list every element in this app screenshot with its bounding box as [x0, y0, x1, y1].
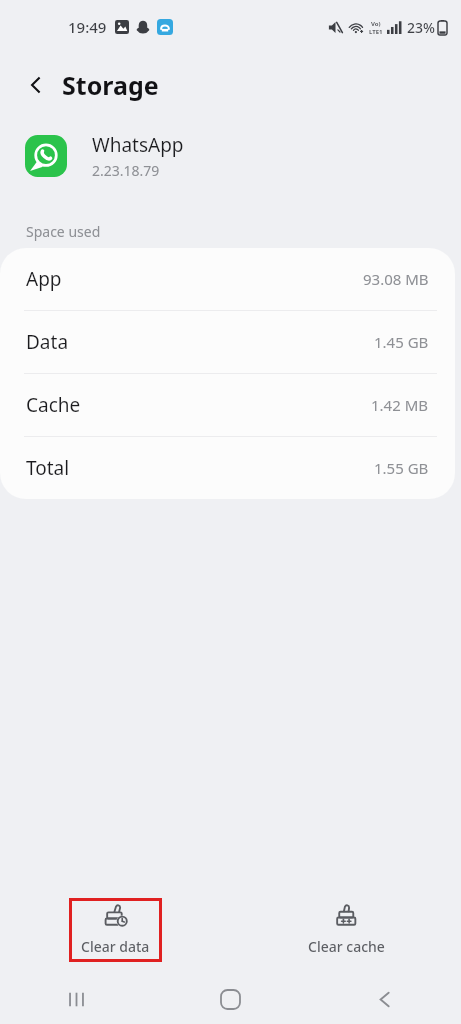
staticText: 1.42 MB: [371, 395, 429, 415]
staticText: 23%: [407, 18, 435, 37]
staticText: Data: [26, 329, 69, 355]
button[interactable]: App: [0, 248, 455, 310]
button[interactable]: Total: [0, 437, 455, 499]
button[interactable]: Clear cache: [286, 898, 406, 962]
staticText: Storage: [62, 68, 159, 102]
staticText: 1.55 GB: [374, 458, 429, 478]
staticText: Clear cache: [308, 937, 385, 956]
staticText: 19:49: [68, 17, 107, 37]
staticText: LTE1: [369, 28, 383, 36]
button[interactable]: Clear data: [69, 898, 162, 962]
staticText: App: [26, 266, 62, 292]
button[interactable]: Home: [153, 975, 307, 1024]
staticText: Total: [26, 455, 70, 481]
button[interactable]: Data: [0, 311, 455, 373]
staticText: 2.23.18.79: [92, 161, 160, 180]
button[interactable]: Back: [18, 67, 54, 103]
button[interactable]: WhatsApp: [0, 116, 461, 196]
staticText: 1.45 GB: [374, 332, 429, 352]
button[interactable]: Recent apps: [0, 975, 153, 1024]
staticText: WhatsApp: [92, 132, 184, 158]
staticText: Clear data: [81, 937, 150, 956]
staticText: Vo): [371, 20, 381, 28]
button[interactable]: Back: [307, 975, 461, 1024]
staticText: 93.08 MB: [363, 269, 429, 289]
staticText: Space used: [26, 222, 101, 241]
staticText: Cache: [26, 392, 81, 418]
button[interactable]: Cache: [0, 374, 455, 436]
